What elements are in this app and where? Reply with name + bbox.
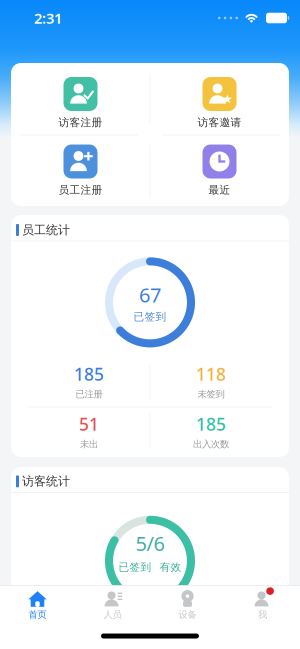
staticText: 访客注册: [58, 116, 102, 129]
button[interactable]: 员工注册: [11, 144, 150, 197]
staticText: 人员: [103, 609, 121, 620]
staticText: 员工统计: [22, 223, 70, 237]
staticText: 118: [196, 362, 226, 385]
staticText: 51: [79, 412, 99, 435]
staticText: 设备: [178, 609, 196, 620]
staticText: 已注册: [75, 388, 102, 400]
staticText: 185: [196, 412, 226, 435]
staticText: 我: [258, 609, 267, 620]
staticText: 未出: [80, 438, 98, 450]
staticText: 未签到: [197, 388, 224, 400]
staticText: 员工注册: [58, 183, 102, 197]
staticText: 首页: [28, 609, 46, 620]
staticText: 出入次数: [193, 438, 229, 450]
staticText: 2:31: [34, 8, 62, 28]
staticText: 访客邀请: [197, 116, 241, 129]
button[interactable]: 人员: [75, 590, 150, 620]
staticText: 访客统计: [22, 474, 70, 489]
staticText: 已签到: [118, 560, 151, 574]
button[interactable]: 最近: [150, 144, 289, 197]
staticText: 已签到: [133, 310, 166, 323]
staticText: 5/6: [135, 530, 164, 557]
staticText: 185: [74, 362, 104, 385]
button[interactable]: 访客邀请: [150, 77, 289, 129]
button[interactable]: 我: [225, 590, 300, 620]
staticText: 最近: [208, 183, 230, 197]
button[interactable]: 访客注册: [11, 77, 150, 129]
button[interactable]: 首页: [0, 590, 75, 620]
staticText: 67: [139, 282, 161, 308]
button[interactable]: 设备: [150, 590, 225, 620]
staticText: 有效: [159, 560, 181, 574]
